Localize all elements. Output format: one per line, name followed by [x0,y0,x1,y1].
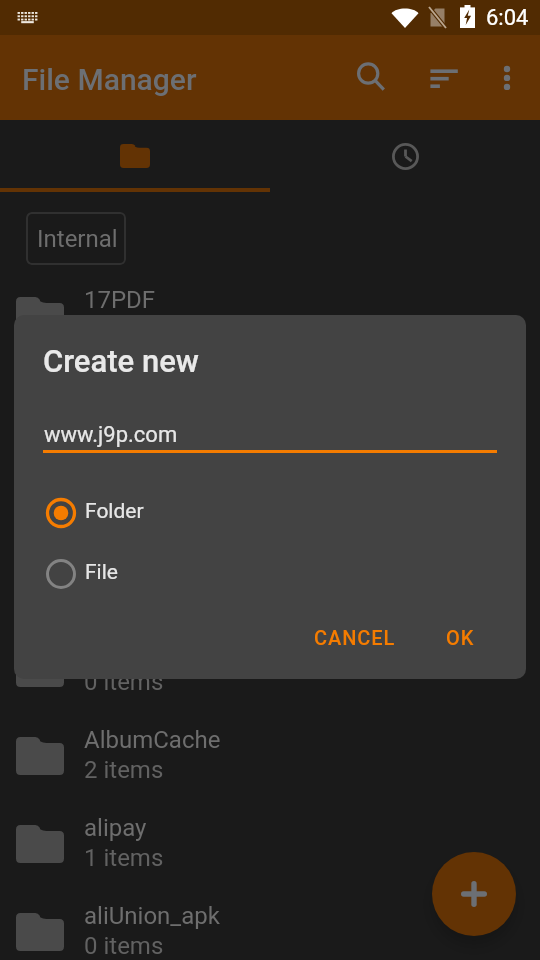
button[interactable]: Create new [432,852,516,936]
button[interactable]: File [14,552,526,596]
staticText: 5 items [84,492,164,520]
staticText: AlbumCache [84,726,221,754]
button[interactable]: Internal [26,212,126,265]
button[interactable]: Recent tab [270,120,540,192]
staticText: CANCEL [314,626,396,649]
button[interactable]: Folders tab [0,120,270,192]
button[interactable]: More options [479,41,535,113]
button[interactable]: 17PDF [0,271,540,359]
button[interactable]: alipay [0,799,540,887]
staticText: www.j9p.com [44,422,178,448]
staticText: alipay [84,814,147,842]
button[interactable]: DCIM [0,623,540,711]
button[interactable]: backups [0,535,540,623]
staticText: 0 items [84,404,164,432]
staticText: aliUnion_apk [84,902,220,930]
staticText: 17PDF [84,286,156,314]
staticText: 6:04 [486,5,529,31]
button[interactable]: aliUnion_apk [0,887,540,960]
staticText: 0 items [84,668,164,696]
button[interactable]: Alarms [0,359,540,447]
staticText: Internal [37,225,118,253]
staticText: backups [84,550,175,578]
staticText: 0 items [84,932,164,960]
button[interactable]: Folder [14,491,526,535]
staticText: Folder [85,499,144,524]
button[interactable]: Search [340,41,396,113]
staticText: OK [446,626,475,649]
staticText: File Manager [22,62,197,97]
button[interactable]: CANCEL [309,612,401,662]
button[interactable]: Sort [412,41,468,113]
staticText: File [85,560,118,585]
staticText: 1 items [84,844,164,872]
staticText: 2 items [84,756,164,784]
button[interactable]: OK [431,612,489,662]
staticText: Create new [43,343,199,379]
button[interactable]: Android [0,447,540,535]
button[interactable]: AlbumCache [0,711,540,799]
